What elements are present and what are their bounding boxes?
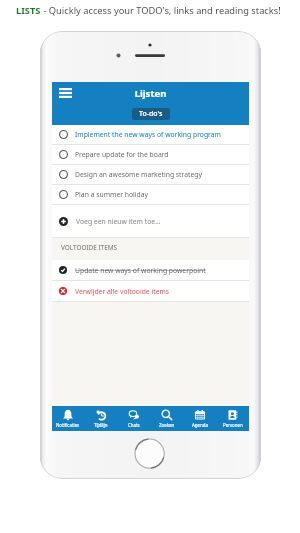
- staticText: Personen: [223, 422, 243, 428]
- button[interactable]: Verwijder alle voltooide items: [52, 281, 249, 301]
- staticText: Agenda: [192, 422, 208, 428]
- button[interactable]: Design an awesome marketing strategy: [52, 165, 249, 184]
- staticText: Tijdlijn: [94, 422, 108, 428]
- button[interactable]: Voeg een nieuw item toe...: [52, 205, 249, 237]
- button[interactable]: Implement the new ways of working progra…: [52, 125, 249, 144]
- button[interactable]: Prepare update for the board: [52, 145, 249, 164]
- staticText: Notificaties: [56, 422, 80, 428]
- staticText: VOLTOOIDE ITEMS: [61, 243, 118, 252]
- staticText: Update new ways of working powerpoint: [75, 266, 206, 275]
- staticText: Implement the new ways of working progra…: [75, 130, 221, 139]
- staticText: To-do's: [139, 109, 163, 119]
- button[interactable]: Tijdlijn: [84, 406, 117, 428]
- staticText: Prepare update for the board: [75, 150, 169, 159]
- staticText: Zoeken: [159, 422, 175, 428]
- staticText: LISTS: [16, 4, 41, 17]
- staticText: - Quickly access your TODO's, links and …: [41, 4, 281, 17]
- button[interactable]: Chats: [117, 406, 150, 428]
- button[interactable]: Zoeken: [150, 406, 183, 428]
- button[interactable]: Notificaties: [52, 406, 84, 428]
- button[interactable]: To-do's: [132, 108, 170, 120]
- staticText: Chats: [128, 422, 140, 428]
- button[interactable]: Personen: [216, 406, 249, 428]
- button[interactable]: Update new ways of working powerpoint: [52, 260, 249, 280]
- button[interactable]: Open navigation menu: [55, 82, 76, 103]
- staticText: Plan a summer holiday: [75, 190, 149, 199]
- staticText: Voeg een nieuw item toe...: [76, 217, 161, 226]
- staticText: Lijsten: [52, 87, 249, 100]
- button[interactable]: Agenda: [183, 406, 216, 428]
- staticText: Verwijder alle voltooide items: [75, 287, 170, 296]
- staticText: Design an awesome marketing strategy: [75, 170, 202, 179]
- button[interactable]: Plan a summer holiday: [52, 185, 249, 204]
